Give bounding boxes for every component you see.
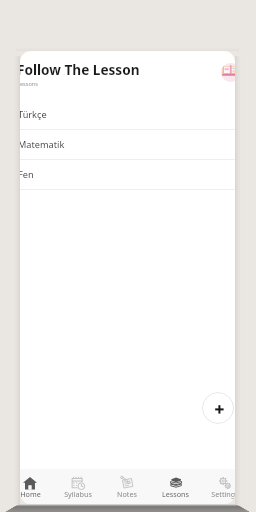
- button[interactable]: Lessons: [151, 469, 200, 504]
- button[interactable]: Notes: [102, 469, 151, 504]
- button[interactable]: Home: [20, 469, 54, 504]
- staticText: Lessons: [20, 80, 38, 88]
- button[interactable]: Syllabus: [54, 469, 102, 504]
- button[interactable]: Türkçe: [20, 100, 235, 130]
- staticText: Türkçe: [20, 108, 47, 121]
- button[interactable]: Profile: [221, 63, 235, 82]
- staticText: Matematik: [20, 138, 65, 151]
- button[interactable]: Fen: [20, 160, 235, 190]
- button[interactable]: Add lesson: [202, 392, 234, 424]
- staticText: Follow The Lesson: [20, 60, 140, 79]
- button[interactable]: Matematik: [20, 130, 235, 160]
- staticText: Home: [20, 489, 41, 499]
- staticText: Fen: [20, 168, 34, 181]
- staticText: Lessons: [162, 489, 189, 499]
- staticText: Notes: [117, 489, 137, 499]
- staticText: Settings: [211, 489, 235, 499]
- staticText: Syllabus: [64, 489, 92, 499]
- button[interactable]: Settings: [200, 469, 235, 504]
